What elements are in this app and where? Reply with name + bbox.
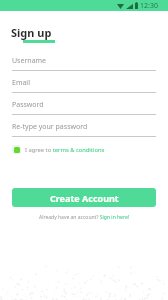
staticText: Sign up	[11, 25, 52, 40]
staticText: Email	[12, 78, 30, 88]
staticText: 12:30	[140, 1, 158, 11]
button[interactable]: Already have an account? Sign in here!	[39, 214, 130, 221]
button[interactable]: Create Account	[12, 188, 156, 207]
button[interactable]: Password	[12, 98, 156, 115]
button[interactable]: Re-type your password	[12, 120, 156, 137]
button[interactable]: Email	[12, 76, 156, 93]
staticText: Password	[12, 100, 44, 110]
staticText: Re-type your password	[12, 122, 88, 132]
staticText: Username	[12, 56, 47, 66]
button[interactable]: Accept terms checkbox	[12, 145, 105, 154]
other: Accept terms checkbox	[12, 145, 21, 154]
staticText: Create Account	[50, 192, 119, 204]
button[interactable]: Username	[12, 54, 156, 71]
staticText: I agree to terms & conditions	[25, 146, 105, 154]
